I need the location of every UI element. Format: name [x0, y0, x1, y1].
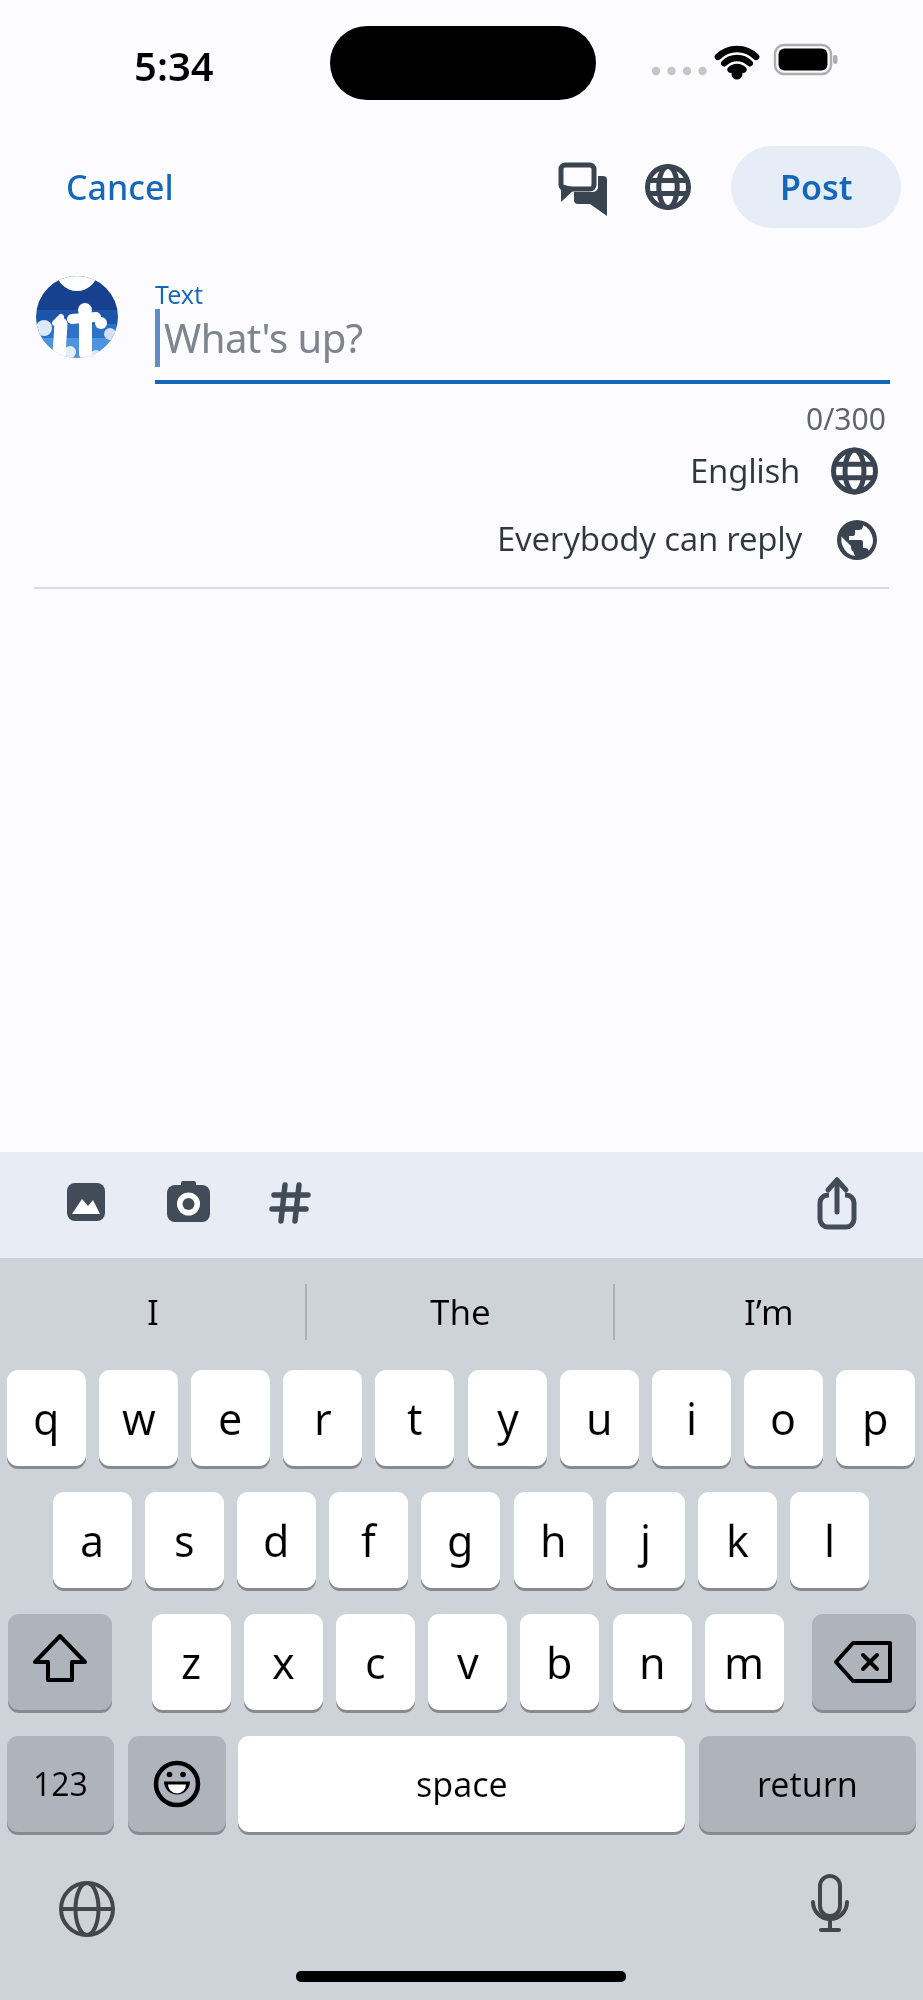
button[interactable]: f: [329, 1492, 408, 1588]
staticText: 123: [33, 1762, 88, 1806]
button[interactable]: e: [191, 1370, 270, 1466]
button[interactable]: 123: [7, 1736, 114, 1832]
staticText: I’m: [744, 1288, 794, 1336]
button[interactable]: [814, 1174, 860, 1232]
staticText: u: [586, 1389, 613, 1448]
staticText: i: [686, 1389, 698, 1448]
staticText: v: [457, 1633, 479, 1692]
button[interactable]: I’m: [626, 1284, 911, 1340]
staticText: Everybody can reply: [497, 516, 802, 561]
staticText: m: [724, 1633, 765, 1692]
staticText: Text: [155, 277, 204, 311]
staticText: return: [757, 1761, 858, 1807]
button[interactable]: [806, 1872, 854, 1944]
button[interactable]: v: [428, 1614, 507, 1710]
staticText: z: [181, 1633, 202, 1692]
staticText: 0/300: [806, 398, 886, 436]
button[interactable]: Everybody can reply: [0, 514, 878, 562]
button[interactable]: I: [10, 1284, 295, 1340]
staticText: 5:34: [134, 38, 214, 84]
button[interactable]: w: [99, 1370, 178, 1466]
button[interactable]: n: [613, 1614, 692, 1710]
button[interactable]: q: [7, 1370, 86, 1466]
button[interactable]: y: [468, 1370, 547, 1466]
button[interactable]: t: [375, 1370, 454, 1466]
staticText: g: [447, 1511, 474, 1570]
button[interactable]: u: [560, 1370, 639, 1466]
staticText: d: [263, 1511, 290, 1570]
button[interactable]: [640, 159, 696, 215]
staticText: Post: [780, 164, 853, 210]
staticText: k: [726, 1511, 749, 1570]
button[interactable]: [548, 156, 616, 222]
staticText: b: [546, 1633, 573, 1692]
button[interactable]: return: [699, 1736, 916, 1832]
staticText: l: [824, 1511, 836, 1570]
staticText: c: [365, 1633, 386, 1692]
button[interactable]: Cancel: [56, 158, 186, 216]
button[interactable]: b: [520, 1614, 599, 1710]
staticText: p: [862, 1389, 889, 1448]
button[interactable]: [150, 266, 890, 388]
button[interactable]: English: [0, 446, 877, 494]
button[interactable]: [164, 1178, 212, 1226]
button[interactable]: [270, 1182, 312, 1224]
button[interactable]: m: [705, 1614, 784, 1710]
staticText: space: [416, 1761, 508, 1807]
button[interactable]: p: [836, 1370, 915, 1466]
staticText: n: [639, 1633, 666, 1692]
button[interactable]: a: [53, 1492, 132, 1588]
staticText: j: [640, 1511, 652, 1570]
button[interactable]: [8, 1614, 112, 1710]
staticText: x: [272, 1633, 295, 1692]
staticText: I: [147, 1288, 159, 1336]
staticText: What's up?: [164, 310, 363, 364]
staticText: y: [497, 1389, 519, 1448]
button[interactable]: d: [237, 1492, 316, 1588]
staticText: a: [80, 1511, 105, 1570]
button[interactable]: [58, 1880, 116, 1938]
staticText: e: [218, 1389, 243, 1448]
button[interactable]: [812, 1614, 916, 1710]
staticText: Cancel: [66, 164, 174, 210]
button[interactable]: z: [152, 1614, 231, 1710]
button[interactable]: h: [514, 1492, 593, 1588]
button[interactable]: g: [421, 1492, 500, 1588]
button[interactable]: space: [238, 1736, 685, 1832]
button[interactable]: j: [606, 1492, 685, 1588]
button[interactable]: r: [283, 1370, 362, 1466]
staticText: f: [361, 1511, 376, 1570]
button[interactable]: c: [336, 1614, 415, 1710]
button[interactable]: k: [698, 1492, 777, 1588]
button[interactable]: [128, 1736, 226, 1832]
staticText: t: [407, 1389, 423, 1448]
button[interactable]: s: [145, 1492, 224, 1588]
button[interactable]: i: [652, 1370, 731, 1466]
staticText: The: [430, 1288, 491, 1336]
staticText: English: [690, 448, 801, 493]
button[interactable]: [36, 276, 118, 358]
staticText: s: [174, 1511, 195, 1570]
button[interactable]: The: [318, 1284, 603, 1340]
button[interactable]: o: [744, 1370, 823, 1466]
button[interactable]: [62, 1178, 110, 1226]
staticText: r: [314, 1389, 332, 1448]
button[interactable]: l: [790, 1492, 869, 1588]
button[interactable]: Post: [731, 146, 901, 228]
staticText: o: [770, 1389, 797, 1448]
staticText: q: [33, 1389, 60, 1448]
staticText: w: [122, 1389, 156, 1448]
staticText: h: [540, 1511, 567, 1570]
button[interactable]: x: [244, 1614, 323, 1710]
